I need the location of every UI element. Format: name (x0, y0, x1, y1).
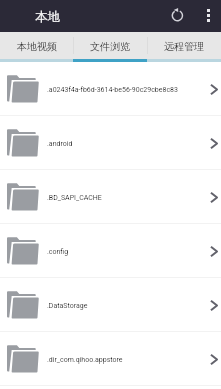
staticText: .DataStorage (47, 302, 200, 310)
staticText: .BD_SAPI_CACHE (47, 194, 200, 202)
button[interactable]: More options (196, 0, 221, 31)
button[interactable]: .dir_com.qihoo.appstore (0, 332, 221, 385)
staticText: 本地 (35, 9, 60, 25)
button[interactable]: 文件浏览 (73, 32, 147, 59)
staticText: .dir_com.qihoo.appstore (47, 356, 200, 364)
staticText: 本地视频 (17, 40, 57, 53)
staticText: .config (47, 248, 200, 256)
button[interactable]: .DataStorage (0, 278, 221, 331)
button[interactable]: 远程管理 (147, 32, 221, 59)
staticText: .android (47, 140, 200, 148)
button[interactable]: .BD_SAPI_CACHE (0, 170, 221, 223)
button[interactable]: .config (0, 224, 221, 277)
button[interactable]: 本地视频 (0, 32, 73, 59)
staticText: 远程管理 (164, 40, 204, 53)
button[interactable]: Refresh (170, 8, 186, 24)
staticText: .a0243f4a-fb6d-3614-be56-90c29cbe8c83 (47, 86, 200, 94)
button[interactable]: .android (0, 116, 221, 169)
staticText: 文件浏览 (90, 40, 130, 53)
button[interactable]: .a0243f4a-fb6d-3614-be56-90c29cbe8c83 (0, 62, 221, 115)
